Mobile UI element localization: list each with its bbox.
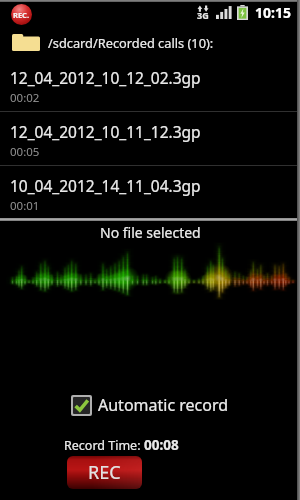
staticText: REC <box>88 460 121 485</box>
staticText: /sdcard/Recorded calls (10): <box>48 34 214 51</box>
button[interactable]: 12_04_2012_10_12_02.3gp <box>0 58 300 112</box>
button[interactable]: REC <box>67 456 142 489</box>
staticText: 12_04_2012_10_11_12.3gp <box>10 121 201 142</box>
staticText: 3G <box>197 9 209 21</box>
staticText: No file selected <box>100 223 201 242</box>
staticText: 00:01 <box>10 198 40 214</box>
button[interactable]: Automatic record <box>71 394 229 416</box>
staticText: 12_04_2012_10_12_02.3gp <box>10 67 201 88</box>
button[interactable]: 12_04_2012_10_11_12.3gp <box>0 112 300 166</box>
staticText: Record Time: <box>64 437 144 454</box>
staticText: 00:05 <box>10 144 40 160</box>
button[interactable]: 10_04_2012_14_11_04.3gp <box>0 166 300 220</box>
staticText: 00:02 <box>10 90 40 106</box>
staticText: 00:08 <box>144 436 179 454</box>
staticText: REC. <box>13 10 30 20</box>
staticText: 10_04_2012_14_11_04.3gp <box>10 175 201 196</box>
staticText: 10:15 <box>255 3 291 22</box>
staticText: Automatic record <box>98 394 229 416</box>
